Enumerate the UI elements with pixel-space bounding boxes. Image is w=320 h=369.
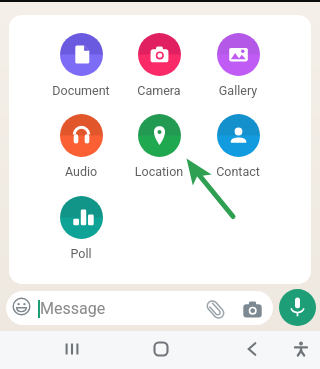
button[interactable]: Home (143, 331, 179, 367)
staticText: Camera (120, 83, 198, 98)
staticText: Message (40, 299, 106, 318)
button[interactable]: Recent apps (54, 331, 90, 367)
staticText: Document (42, 83, 120, 98)
staticText: Audio (42, 164, 120, 179)
button[interactable]: Camera (241, 298, 264, 321)
button[interactable]: Attach (204, 298, 227, 321)
button[interactable]: Accessibility (283, 331, 319, 367)
staticText: Poll (42, 246, 120, 261)
staticText: Gallery (199, 83, 277, 98)
staticText: Contact (199, 164, 277, 179)
button[interactable]: Emoji (11, 296, 32, 317)
button[interactable]: Camera (120, 33, 198, 98)
staticText: Location (120, 164, 198, 179)
button[interactable]: Gallery (199, 33, 277, 98)
button[interactable]: Back (234, 331, 270, 367)
button[interactable]: Contact (199, 114, 277, 179)
button[interactable]: Document (42, 33, 120, 98)
button[interactable]: Poll (42, 196, 120, 261)
button[interactable]: Location (120, 114, 198, 179)
button[interactable]: Emoji (6, 291, 273, 325)
button[interactable]: Record voice message (279, 289, 316, 326)
button[interactable]: Audio (42, 114, 120, 179)
